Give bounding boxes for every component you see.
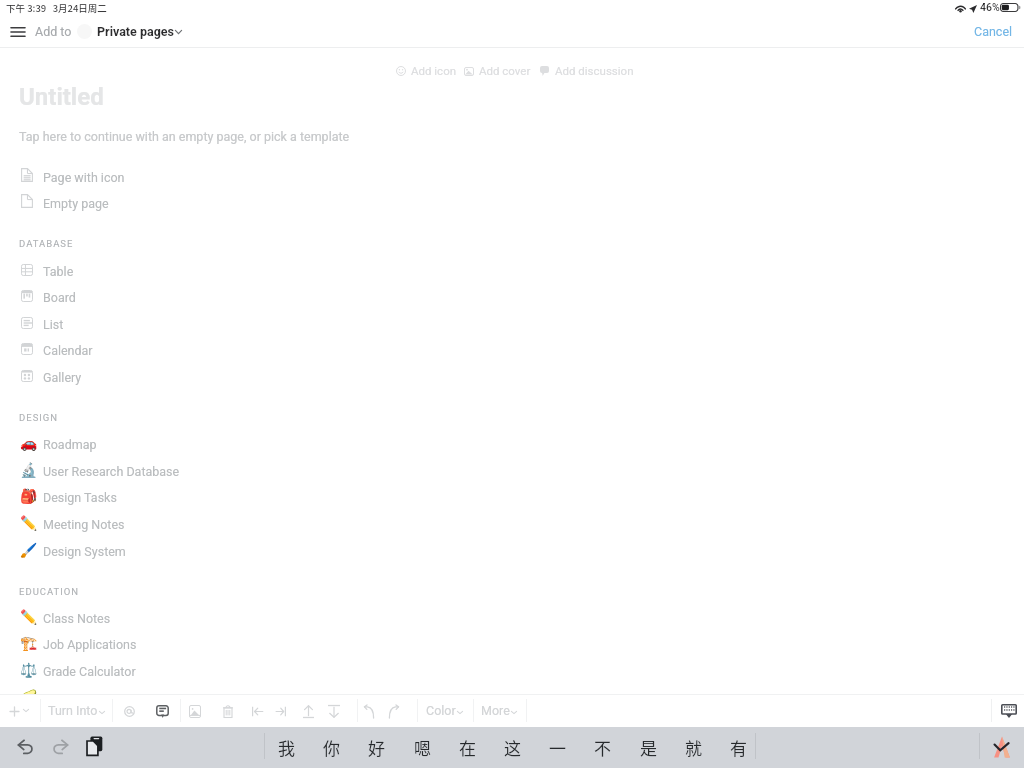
button[interactable]: Move down bbox=[321, 696, 347, 726]
button[interactable]: Redo bbox=[382, 696, 406, 726]
button[interactable]: 🚗 bbox=[0, 430, 1024, 456]
staticText: List bbox=[43, 317, 64, 332]
staticText: 一 bbox=[549, 735, 566, 760]
staticText: Design System bbox=[43, 544, 126, 559]
staticText: 你 bbox=[323, 735, 340, 760]
button[interactable]: Outdent bbox=[245, 696, 271, 726]
button[interactable]: Add to bbox=[30, 18, 76, 45]
staticText: EDUCATION bbox=[19, 586, 80, 597]
staticText: Recipes bbox=[43, 691, 88, 706]
button[interactable]: Indent bbox=[268, 696, 293, 726]
staticText: 不 bbox=[594, 735, 611, 760]
button[interactable]: 🖌 bbox=[0, 537, 1024, 563]
button[interactable]: More bbox=[473, 696, 517, 726]
button[interactable]: 🔬 bbox=[0, 457, 1024, 483]
staticText: 🎒 bbox=[20, 488, 37, 504]
staticText: Page with icon bbox=[43, 170, 125, 185]
staticText: Roadmap bbox=[43, 437, 97, 452]
staticText: Empty page bbox=[43, 196, 109, 211]
staticText: Untitled bbox=[19, 83, 104, 111]
button[interactable]: ✏️ bbox=[0, 510, 1024, 536]
button[interactable]: Undo bbox=[357, 696, 381, 726]
staticText: ✏️ bbox=[20, 515, 37, 531]
button[interactable]: 嗯 bbox=[400, 727, 444, 768]
staticText: Design Tasks bbox=[43, 490, 117, 505]
button[interactable]: Add cover bbox=[462, 62, 529, 79]
staticText: Table bbox=[43, 264, 74, 279]
button[interactable]: Insert block bbox=[2, 696, 38, 726]
button[interactable]: Redo bbox=[46, 732, 75, 761]
button[interactable]: 有 bbox=[716, 727, 760, 768]
button[interactable]: Empty page bbox=[0, 189, 1024, 215]
staticText: Private pages bbox=[97, 24, 174, 39]
button[interactable]: Cancel bbox=[966, 18, 1020, 45]
button[interactable]: 是 bbox=[626, 727, 670, 768]
button[interactable]: Private pages bbox=[92, 18, 187, 45]
staticText: Turn Into bbox=[48, 703, 98, 718]
button[interactable]: 好 bbox=[354, 727, 398, 768]
button[interactable]: 我 bbox=[264, 727, 308, 768]
button[interactable]: ✏️ bbox=[0, 604, 1024, 630]
button[interactable]: Image bbox=[182, 696, 208, 726]
button[interactable]: 这 bbox=[490, 727, 534, 768]
button[interactable]: Hide keyboard bbox=[994, 696, 1024, 726]
button[interactable]: Add discussion bbox=[538, 62, 630, 79]
staticText: Cancel bbox=[974, 24, 1013, 39]
staticText: ✏️ bbox=[20, 609, 37, 625]
button[interactable]: 你 bbox=[309, 727, 353, 768]
staticText: Gallery bbox=[43, 370, 82, 385]
staticText: Board bbox=[43, 290, 76, 305]
button[interactable]: 一 bbox=[535, 727, 579, 768]
button[interactable]: Gallery bbox=[0, 363, 1024, 389]
button[interactable]: Move up bbox=[296, 696, 321, 726]
staticText: 下午 3:39 3月24日周二 bbox=[6, 1, 107, 15]
staticText: DATABASE bbox=[19, 238, 74, 249]
staticText: 嗯 bbox=[414, 735, 431, 760]
staticText: 🥑 bbox=[20, 689, 37, 705]
staticText: ⚖️ bbox=[20, 662, 37, 678]
staticText: Color bbox=[426, 703, 456, 718]
staticText: Add cover bbox=[479, 64, 531, 77]
button[interactable]: List bbox=[0, 310, 1024, 336]
button[interactable]: Comment bbox=[149, 696, 176, 726]
staticText: 🖌 bbox=[20, 542, 37, 558]
button[interactable]: ⚖️ bbox=[0, 657, 1024, 683]
button[interactable]: Switch input method bbox=[985, 730, 1019, 764]
staticText: 有 bbox=[730, 735, 747, 760]
staticText: 好 bbox=[368, 735, 385, 760]
staticText: Class Notes bbox=[43, 611, 111, 626]
button[interactable]: 🎒 bbox=[0, 483, 1024, 509]
button[interactable]: Menu bbox=[3, 17, 33, 46]
staticText: 我 bbox=[278, 735, 295, 760]
button[interactable]: 就 bbox=[671, 727, 715, 768]
staticText: Job Applications bbox=[43, 637, 137, 652]
button[interactable]: Table bbox=[0, 257, 1024, 283]
button[interactable]: Page with icon bbox=[0, 163, 1024, 189]
staticText: Meeting Notes bbox=[43, 517, 125, 532]
button[interactable]: Undo bbox=[11, 732, 40, 761]
button[interactable]: 🥑 bbox=[0, 684, 1024, 710]
staticText: User Research Database bbox=[43, 464, 180, 479]
button[interactable]: Add icon bbox=[394, 62, 456, 79]
button[interactable]: Calendar bbox=[0, 336, 1024, 362]
staticText: 🔬 bbox=[20, 462, 37, 478]
button[interactable]: Board bbox=[0, 283, 1024, 309]
button[interactable]: Mention bbox=[117, 696, 142, 726]
staticText: 是 bbox=[640, 735, 657, 760]
button[interactable]: Delete bbox=[216, 696, 240, 726]
staticText: More bbox=[481, 703, 510, 718]
button[interactable]: Color bbox=[418, 696, 463, 726]
button[interactable]: 🏗 bbox=[0, 630, 1024, 656]
staticText: Tap here to continue with an empty page,… bbox=[19, 129, 350, 144]
button[interactable]: 不 bbox=[580, 727, 624, 768]
staticText: 就 bbox=[685, 735, 702, 760]
staticText: 🏗 bbox=[20, 635, 37, 651]
staticText: Add to bbox=[35, 24, 72, 39]
staticText: 46% bbox=[980, 1, 1000, 13]
button[interactable]: 在 bbox=[445, 727, 489, 768]
button[interactable]: Paste bbox=[80, 731, 109, 760]
staticText: DESIGN bbox=[19, 412, 59, 423]
button[interactable]: Turn Into bbox=[40, 696, 105, 726]
staticText: 这 bbox=[504, 735, 521, 760]
staticText: Add icon bbox=[411, 64, 457, 77]
